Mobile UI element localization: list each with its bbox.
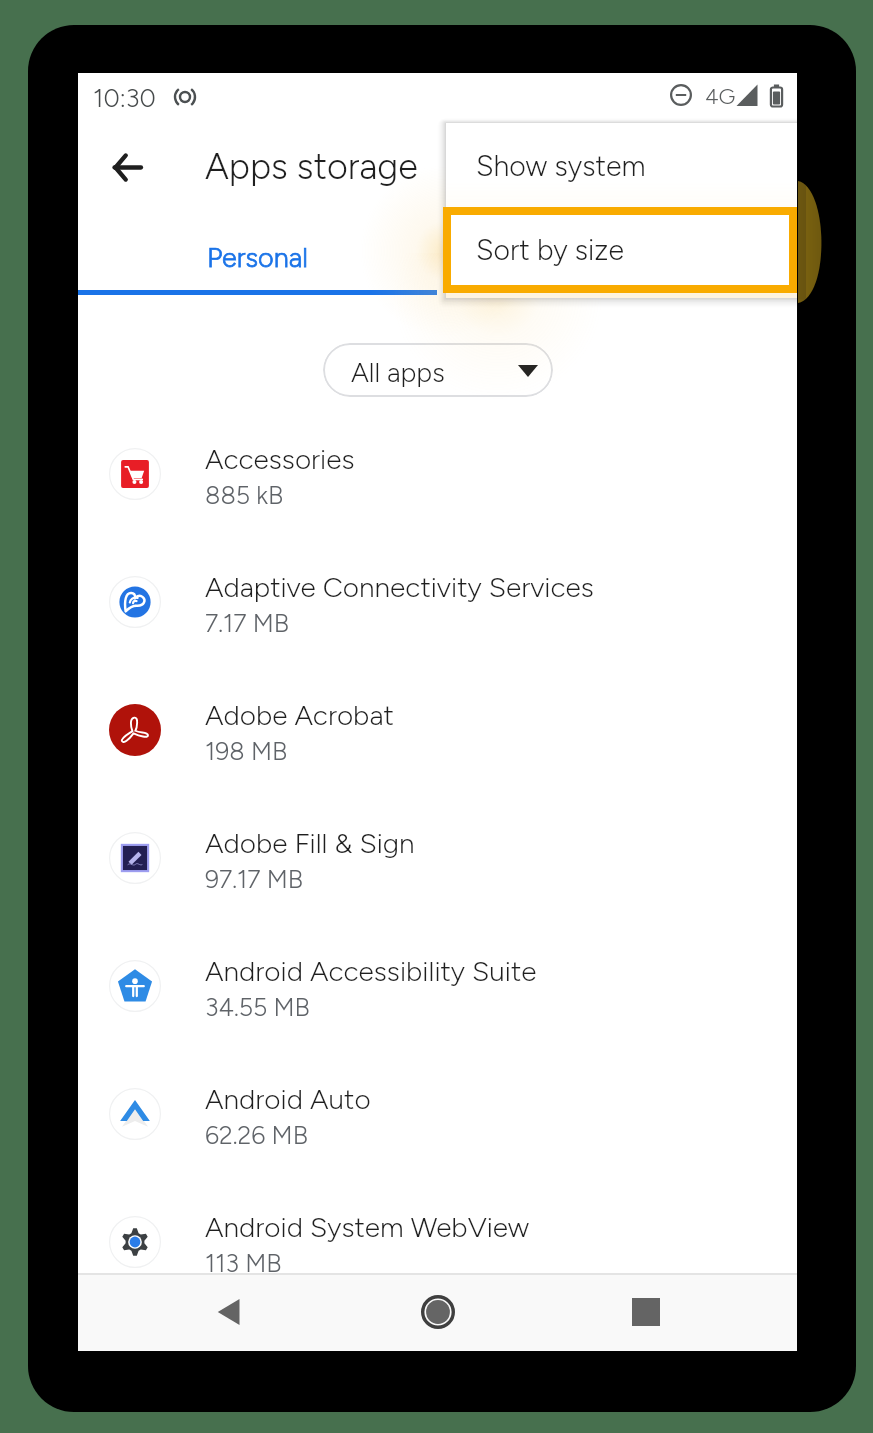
button[interactable]: Show system	[446, 123, 797, 209]
staticText: 198 MB	[205, 736, 288, 766]
button[interactable]: Adobe Fill & Sign	[78, 794, 797, 922]
staticText: 10:30	[93, 83, 156, 114]
button[interactable]: Personal	[78, 205, 437, 295]
staticText: 62.26 MB	[205, 1120, 308, 1150]
staticText: Personal	[207, 241, 308, 273]
button[interactable]: All apps	[323, 343, 553, 397]
button[interactable]: Adobe Acrobat	[78, 666, 797, 794]
button[interactable]: Android System WebView	[78, 1178, 797, 1306]
staticText: Adobe Acrobat	[205, 698, 394, 732]
staticText: 4G	[705, 83, 736, 109]
button[interactable]: Home	[403, 1277, 473, 1347]
staticText: Show system	[476, 149, 646, 183]
staticText: Android System WebView	[205, 1210, 530, 1244]
staticText: Adobe Fill & Sign	[205, 826, 415, 860]
staticText: Apps storage	[205, 145, 418, 188]
staticText: All apps	[351, 356, 445, 388]
staticText: Android Accessibility Suite	[205, 954, 537, 988]
button[interactable]: Android Accessibility Suite	[78, 922, 797, 1050]
staticText: 34.55 MB	[205, 992, 310, 1022]
staticText: Sort by size	[476, 233, 624, 267]
staticText: Personal	[207, 241, 308, 273]
button[interactable]: Android Auto	[78, 1050, 797, 1178]
staticText: 7.17 MB	[205, 608, 290, 638]
button[interactable]: Back	[99, 139, 155, 195]
button[interactable]: Adaptive Connectivity Services	[78, 538, 797, 666]
button[interactable]: Sort by size	[443, 207, 797, 293]
staticText: 113 MB	[205, 1248, 282, 1278]
staticText: Adaptive Connectivity Services	[205, 570, 594, 604]
button[interactable]: Back	[195, 1277, 265, 1347]
button[interactable]: Accessories	[78, 410, 797, 538]
staticText: 97.17 MB	[205, 864, 304, 894]
staticText: Accessories	[205, 442, 355, 476]
staticText: 885 kB	[205, 480, 284, 510]
staticText: Android Auto	[205, 1082, 371, 1116]
button[interactable]: Recent apps	[611, 1277, 681, 1347]
